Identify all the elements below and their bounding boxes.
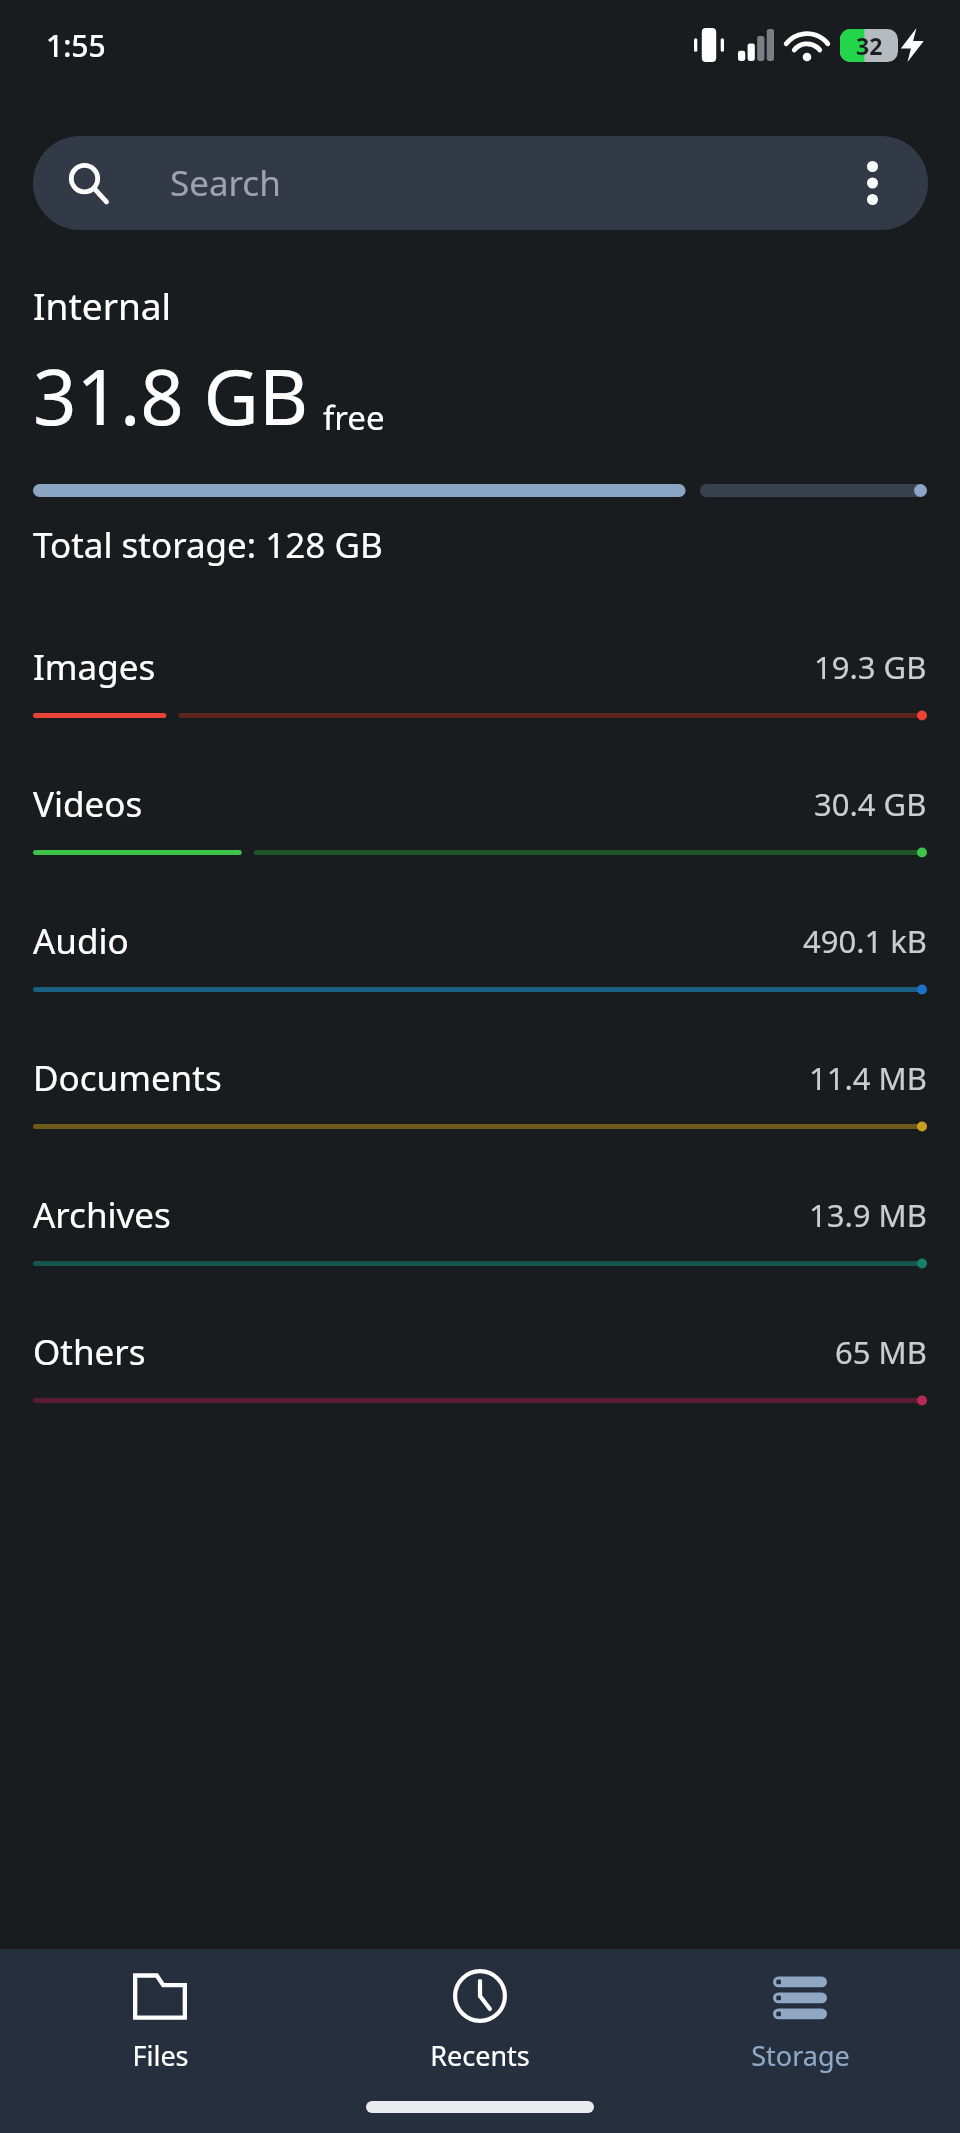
staticText: Total storage: 128 GB (33, 521, 383, 569)
staticText: Documents (33, 1054, 222, 1102)
button[interactable]: Audio (0, 891, 960, 1028)
staticText: Files (132, 2037, 189, 2074)
staticText: 19.3 GB (814, 646, 927, 688)
other: Recents (453, 1969, 507, 2023)
button[interactable]: Videos (0, 754, 960, 891)
staticText: Internal (33, 280, 172, 330)
button[interactable]: More options (836, 147, 908, 219)
staticText: 13.9 MB (809, 1194, 927, 1236)
button[interactable]: Files (0, 1949, 320, 2081)
staticText: Videos (33, 780, 143, 828)
staticText: 65 MB (835, 1331, 927, 1373)
button[interactable]: Archives (0, 1165, 960, 1302)
staticText: 11.4 MB (809, 1057, 927, 1099)
staticText: 31.8 GB (33, 344, 309, 448)
other: Files (133, 1969, 187, 2023)
staticText: Images (33, 643, 156, 691)
staticText: 30.4 GB (814, 783, 927, 825)
button[interactable]: Storage (640, 1949, 960, 2081)
staticText: Search (170, 159, 281, 207)
button[interactable]: Images (0, 617, 960, 754)
staticText: Recents (430, 2037, 530, 2074)
button[interactable]: Recents (320, 1949, 640, 2081)
staticText: Audio (33, 917, 129, 965)
button[interactable]: Others (0, 1302, 960, 1439)
staticText: 32 (856, 30, 883, 61)
staticText: Archives (33, 1191, 171, 1239)
button[interactable]: Search (33, 136, 928, 230)
staticText: Others (33, 1328, 146, 1376)
staticText: 1:55 (46, 25, 106, 66)
button[interactable]: Documents (0, 1028, 960, 1165)
other: Storage (773, 1969, 827, 2023)
staticText: free (323, 395, 385, 440)
staticText: 490.1 kB (803, 920, 927, 962)
staticText: Storage (751, 2037, 850, 2074)
